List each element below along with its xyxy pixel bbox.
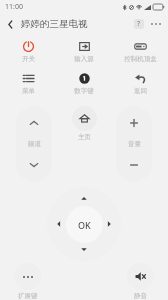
button[interactable]: 开关: [0, 37, 56, 66]
staticText: 数字键: [74, 87, 94, 95]
staticText: OK: [78, 219, 91, 231]
staticText: 音量: [128, 140, 141, 148]
button[interactable]: Down: [72, 237, 96, 261]
staticText: ?: [137, 19, 141, 29]
button[interactable]: 主页: [72, 106, 97, 141]
staticText: 静音: [134, 292, 147, 300]
button[interactable]: 控制机顶盒: [112, 37, 168, 66]
button[interactable]: Back: [0, 14, 20, 34]
staticText: 11:00: [5, 2, 23, 12]
button[interactable]: More options: [147, 15, 164, 32]
staticText: 扩展键: [18, 292, 38, 300]
other: More buttons: [14, 263, 41, 290]
button[interactable]: Help: [130, 15, 147, 32]
button[interactable]: Mute: [127, 263, 154, 300]
button[interactable]: 返回: [112, 69, 168, 98]
staticText: 开关: [22, 55, 35, 63]
staticText: 频道: [28, 140, 41, 148]
button[interactable]: OK: [66, 206, 103, 243]
button[interactable]: Volume down: [116, 148, 152, 182]
staticText: 菜单: [22, 87, 35, 95]
button[interactable]: 菜单: [0, 69, 56, 98]
button[interactable]: Left: [47, 212, 71, 236]
button[interactable]: Volume up: [116, 106, 152, 140]
button[interactable]: Right: [97, 212, 121, 236]
other: Mute: [127, 263, 154, 290]
button[interactable]: 数字键: [56, 69, 112, 98]
staticText: 婷婷的三星电视: [21, 18, 88, 30]
staticText: 输入源: [74, 55, 94, 63]
button[interactable]: Up: [72, 187, 96, 211]
staticText: 返回: [134, 87, 147, 95]
button[interactable]: Channel up: [16, 106, 52, 140]
button[interactable]: More buttons: [14, 263, 41, 300]
staticText: 主页: [78, 133, 91, 141]
button[interactable]: Channel down: [16, 148, 52, 182]
button[interactable]: 输入源: [56, 37, 112, 66]
staticText: 控制机顶盒: [124, 55, 157, 63]
